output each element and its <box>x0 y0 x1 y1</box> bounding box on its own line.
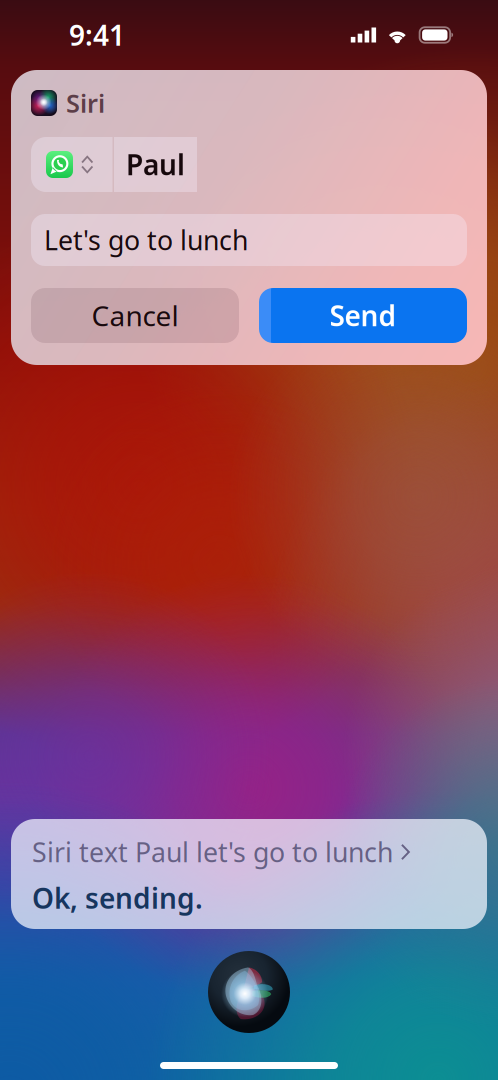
staticText: Let's go to lunch <box>44 222 248 258</box>
button[interactable]: Choose app <box>31 137 112 192</box>
staticText: Send <box>329 297 396 334</box>
staticText: Siri text Paul let's go to lunch <box>32 834 393 870</box>
staticText: Paul <box>126 146 185 183</box>
staticText: Cancel <box>91 297 178 334</box>
staticText: Siri <box>66 86 105 120</box>
button[interactable]: Send <box>259 288 467 343</box>
button[interactable]: Siri text Paul let's go to lunch <box>32 838 469 866</box>
button[interactable]: Cancel <box>31 288 239 343</box>
staticText: Ok, sending. <box>32 879 203 917</box>
button[interactable]: Let's go to lunch <box>31 214 467 266</box>
button[interactable]: Paul <box>114 137 197 192</box>
staticText: 9:41 <box>69 16 125 54</box>
